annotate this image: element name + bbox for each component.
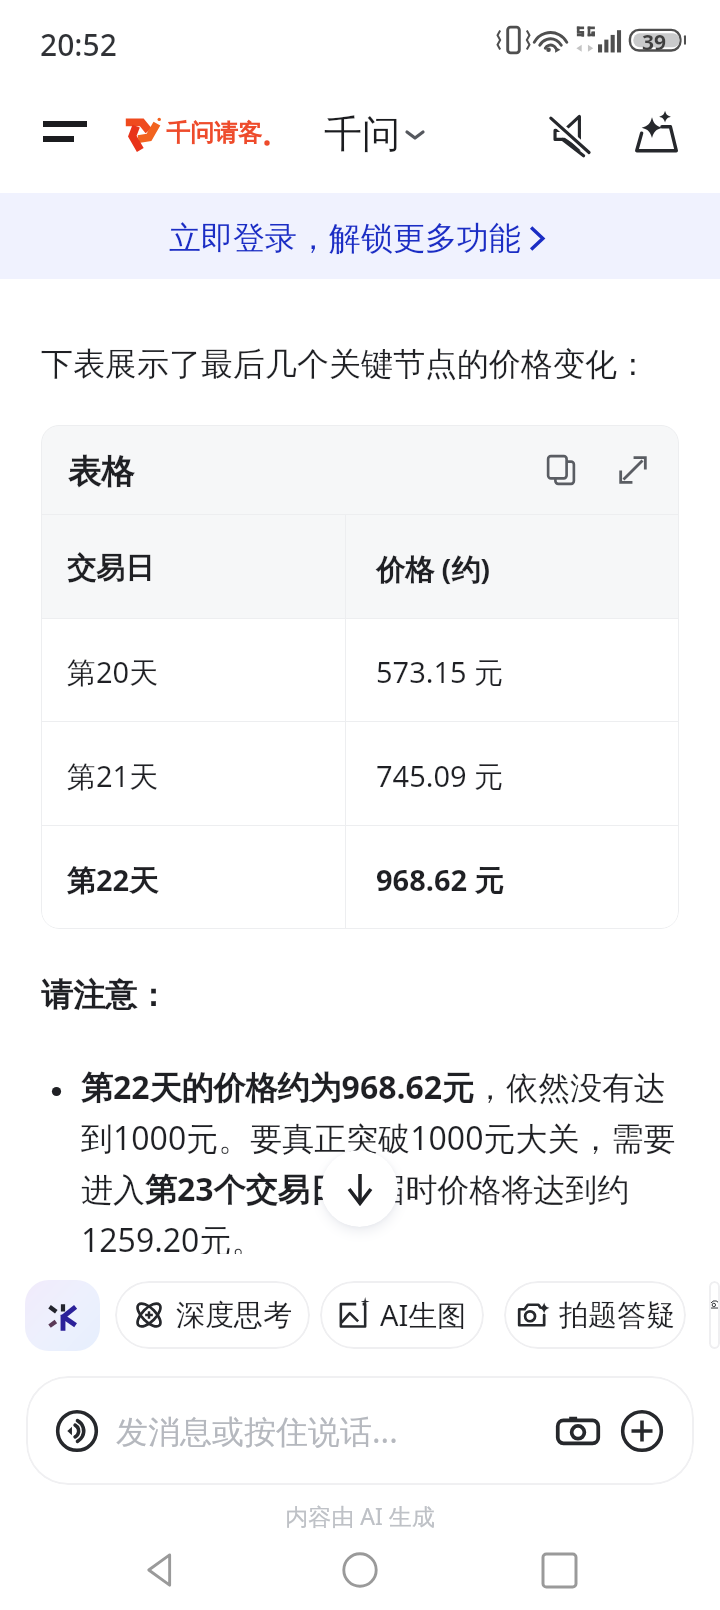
staticText: 第22天 (67, 860, 159, 900)
staticText: 968.62 元 (376, 860, 504, 900)
button[interactable]: Recents (521, 1532, 597, 1608)
staticText: 千问 (324, 110, 400, 158)
staticText: 第21天 (67, 756, 159, 796)
staticText: 发消息或按住说话... (116, 1409, 398, 1453)
button[interactable]: Expand (607, 444, 659, 496)
button[interactable]: 拍题答疑 (504, 1281, 686, 1349)
staticText: 745.09 元 (376, 756, 504, 796)
button[interactable]: AI生图 (320, 1281, 484, 1349)
staticText: 千问请客 (166, 118, 262, 148)
button[interactable]: Add (616, 1405, 668, 1457)
staticText: 表格 (68, 451, 134, 493)
button[interactable]: Home (322, 1532, 398, 1608)
button[interactable]: 学习辅导 (709, 1281, 720, 1349)
button[interactable]: Mute (541, 104, 601, 164)
button[interactable]: Qwen (25, 1280, 100, 1351)
staticText: 第20天 (67, 652, 159, 692)
staticText: 下表展示了最后几个关键节点的价格变化： (41, 344, 649, 384)
button[interactable]: Back (123, 1532, 199, 1608)
button[interactable]: 深度思考 (115, 1281, 310, 1349)
button[interactable]: Camera (552, 1405, 604, 1457)
staticText: 深度思考 (176, 1297, 292, 1334)
staticText: 内容由 AI 生成 (0, 1500, 720, 1531)
button[interactable]: Copy (535, 444, 587, 496)
staticText: 拍题答疑 (559, 1297, 675, 1334)
button[interactable]: 发消息或按住说话... (26, 1376, 694, 1485)
staticText: 立即登录，解锁更多功能 (169, 218, 521, 258)
staticText: 价格 (约) (376, 549, 491, 589)
staticText: 20:52 (40, 24, 117, 65)
staticText: 第22天的价格约为968.62元，依然没有达到1000元。要真正突破1000元大… (81, 1065, 679, 1254)
staticText: AI生图 (380, 1295, 467, 1335)
staticText: 573.15 元 (376, 652, 504, 692)
staticText: 请注意： (41, 975, 169, 1015)
button[interactable]: Menu (28, 100, 84, 156)
button[interactable]: Scroll to bottom (321, 1150, 398, 1227)
button[interactable]: New chat (626, 101, 686, 161)
button[interactable]: 千问 (324, 114, 433, 162)
staticText: 交易日 (67, 550, 154, 587)
button[interactable]: 立即登录，解锁更多功能 (0, 193, 720, 279)
staticText: 39 (642, 28, 667, 52)
